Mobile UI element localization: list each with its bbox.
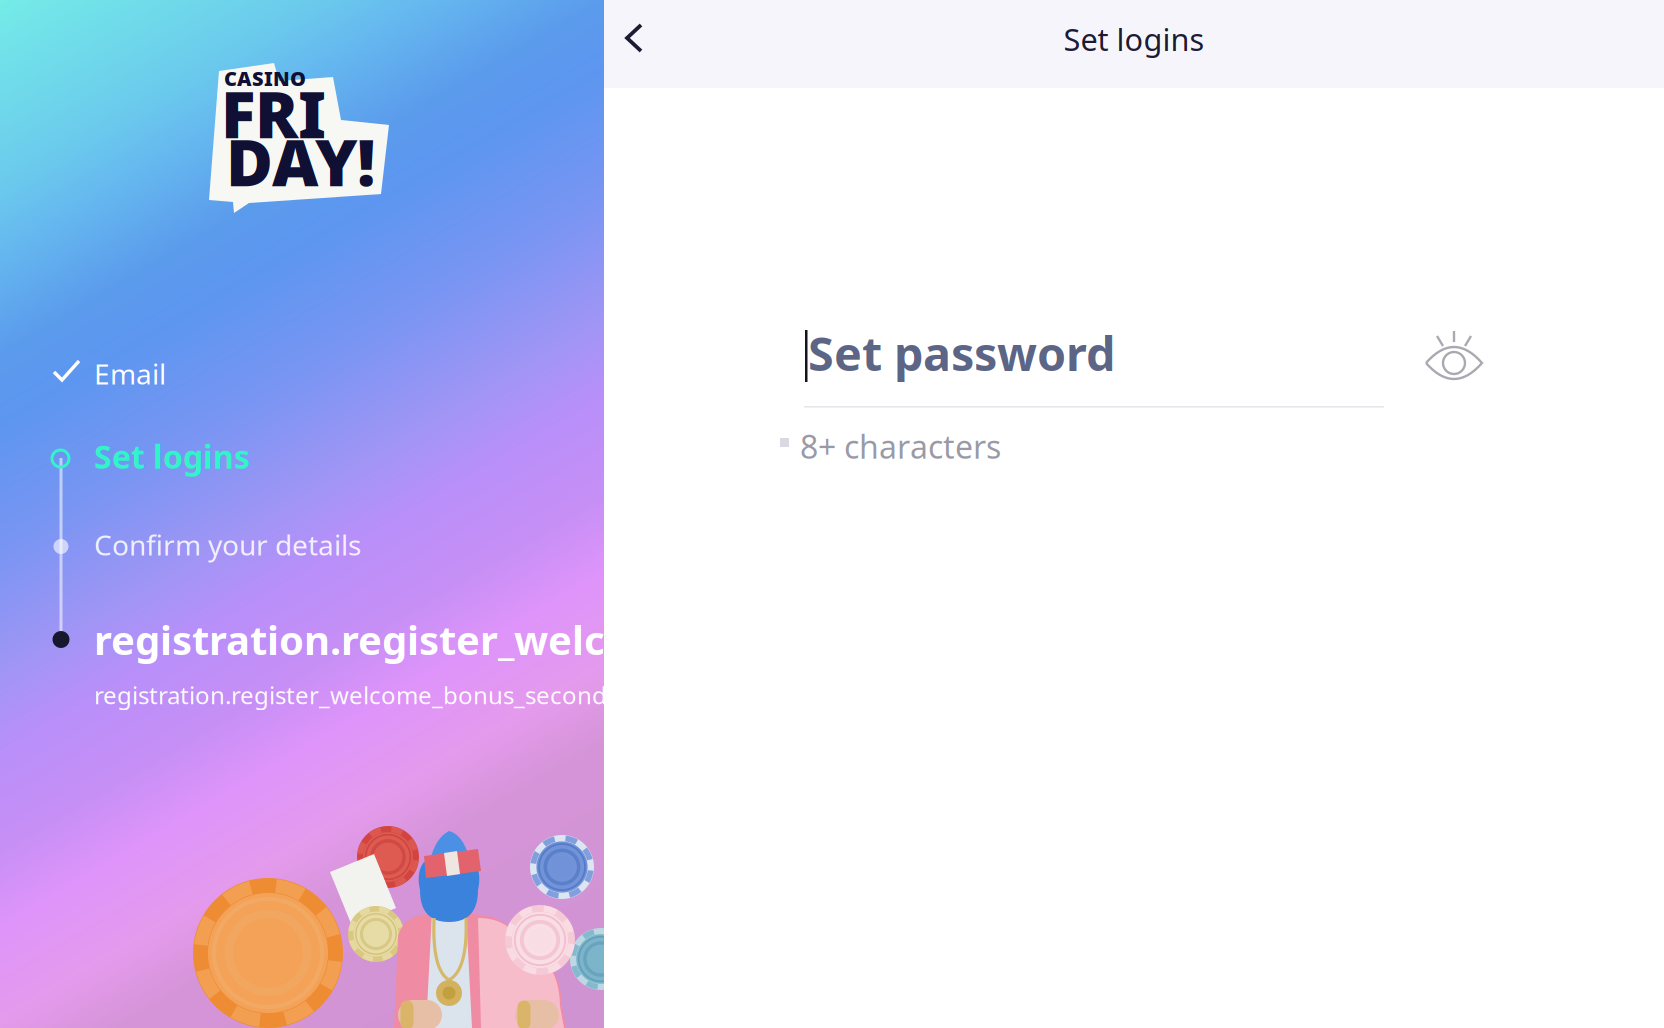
staticText: registration.register_welcome_bonus — [94, 613, 831, 666]
staticText: FRI — [221, 71, 326, 156]
staticText: DAY! — [226, 119, 376, 204]
button[interactable]: Show password — [1412, 312, 1496, 396]
button[interactable]: Back — [606, 0, 662, 82]
staticText: Set logins — [1063, 19, 1204, 59]
staticText: 8+ characters — [800, 425, 1001, 467]
staticText: CASINO — [224, 65, 306, 92]
staticText: Confirm your details — [94, 526, 361, 563]
staticText: Email — [94, 355, 166, 392]
staticText: Set password — [808, 322, 1115, 384]
staticText: registration.register_welcome_bonus_seco… — [94, 679, 642, 711]
staticText: Set logins — [94, 435, 250, 477]
